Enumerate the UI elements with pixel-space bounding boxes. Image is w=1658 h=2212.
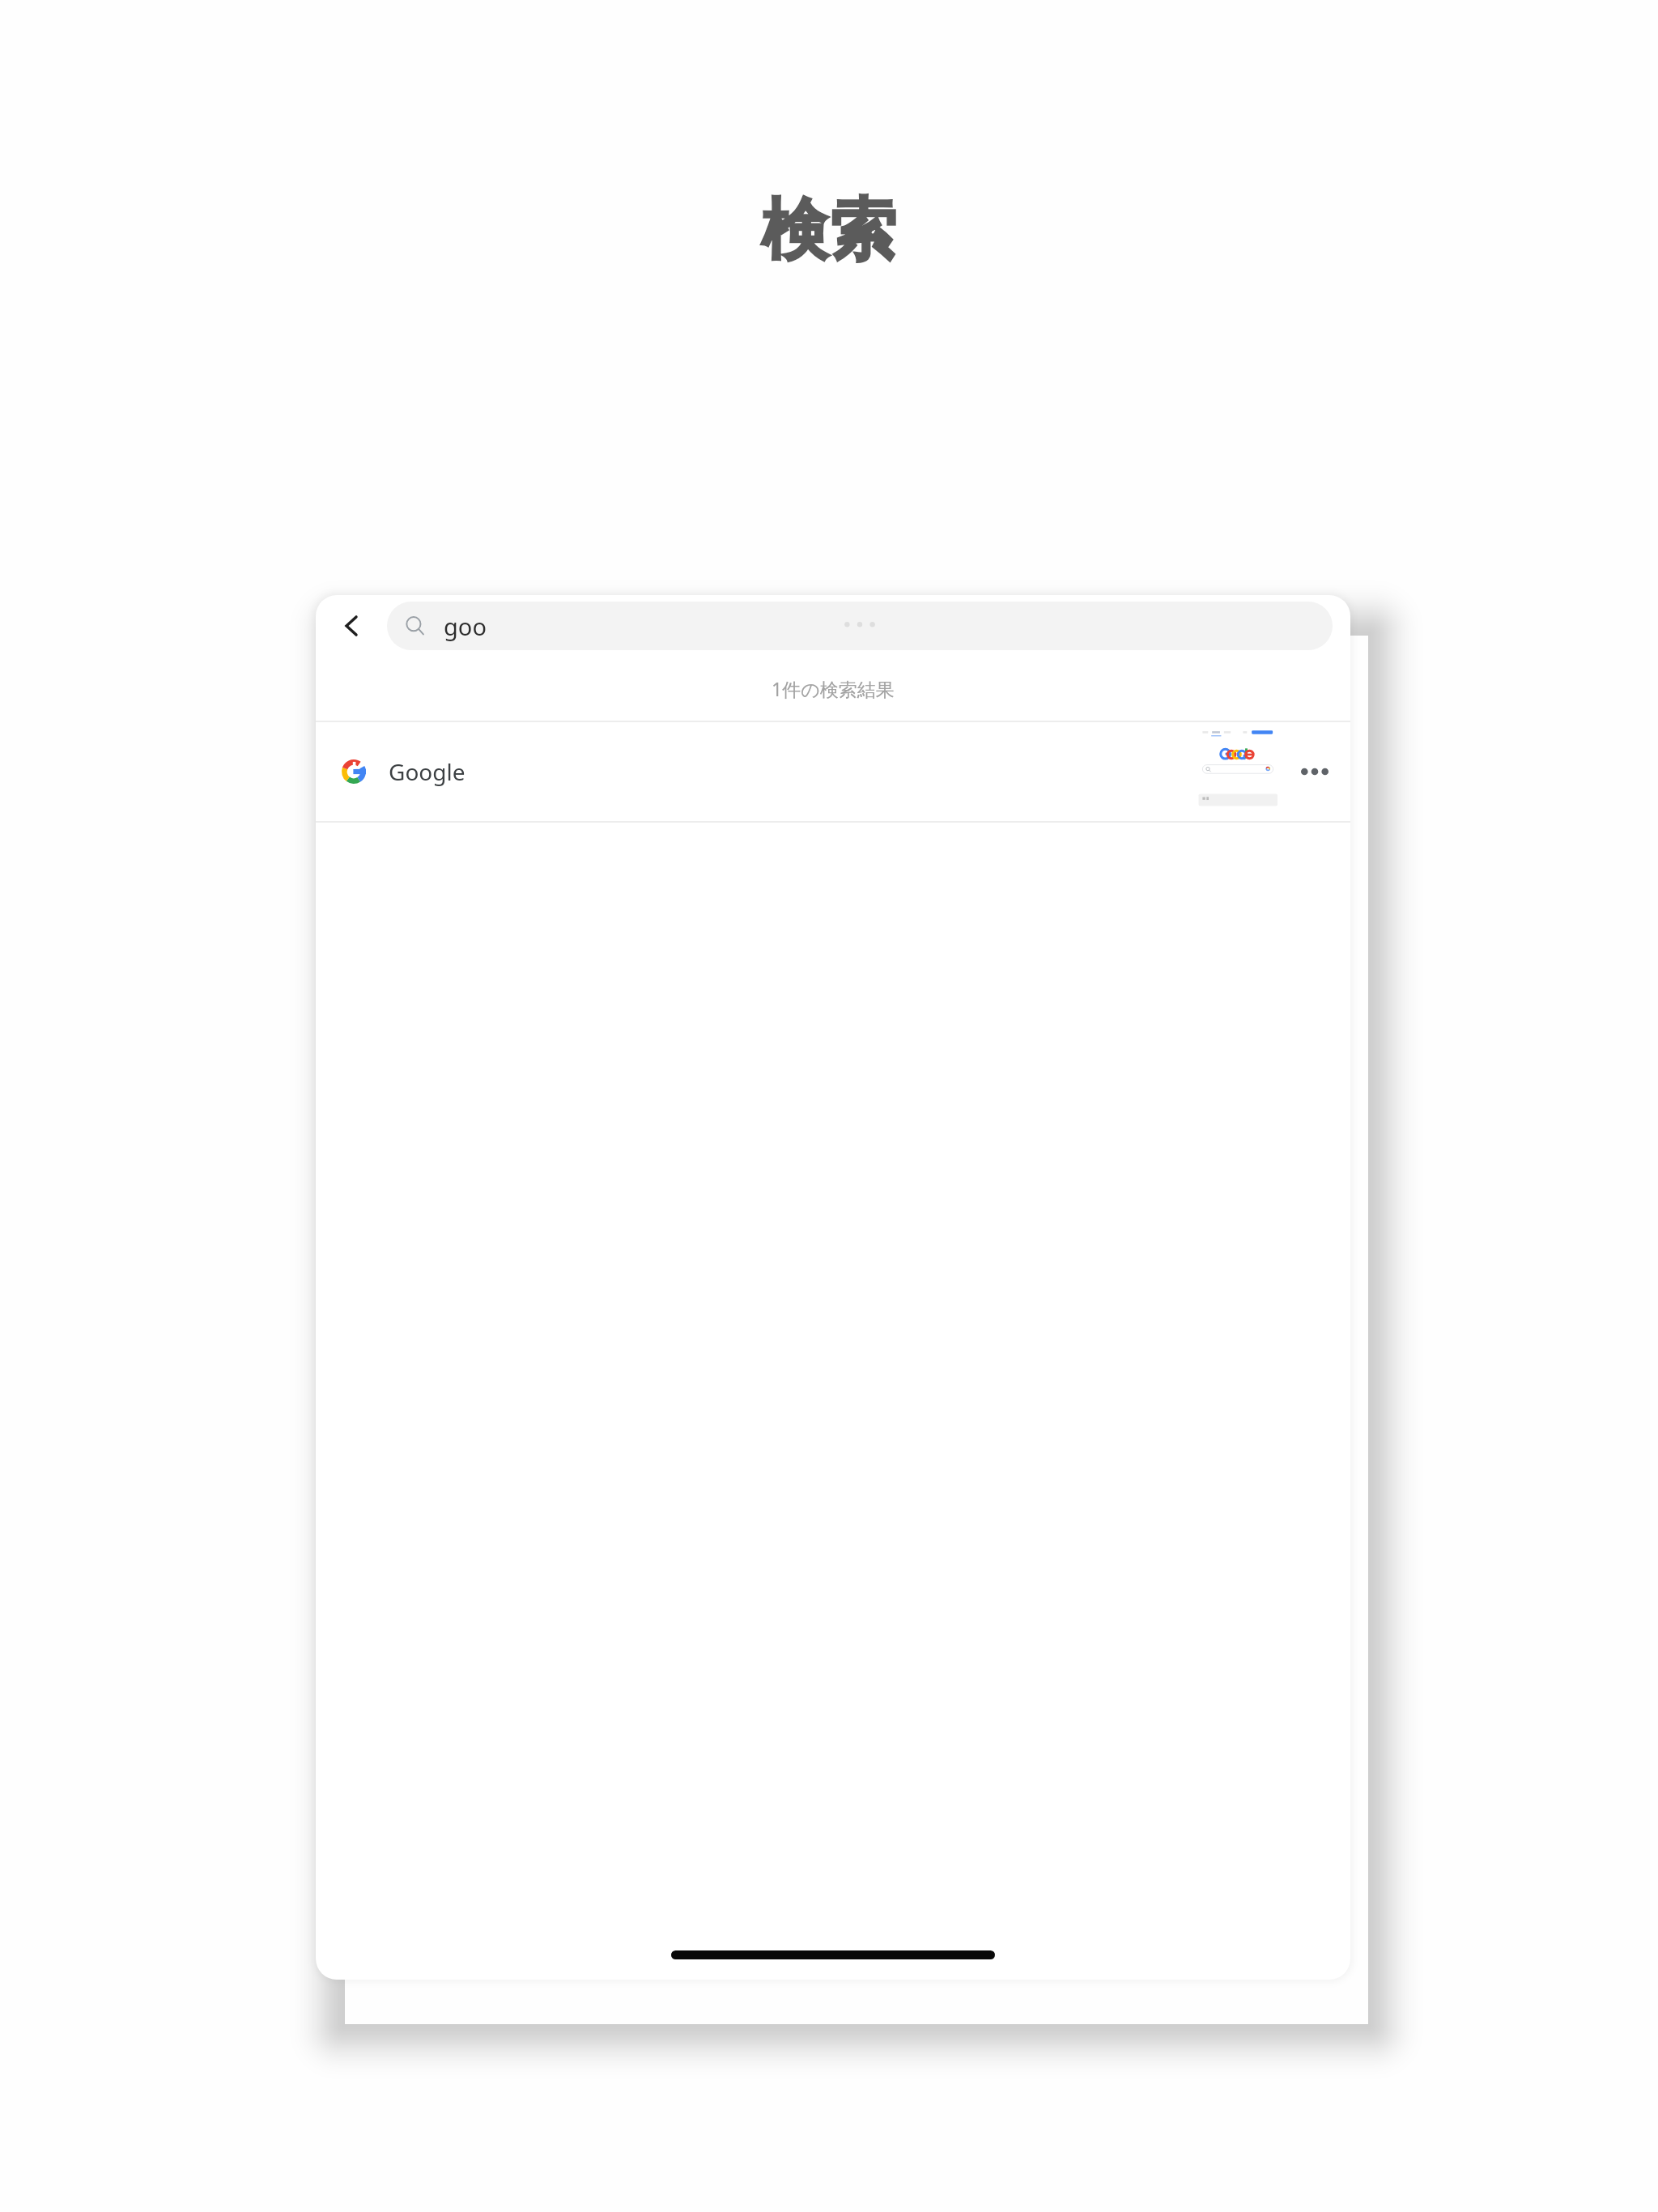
staticText: goo [444,610,487,642]
button[interactable]: その他のオプション [1290,722,1339,821]
staticText: 検索 [761,189,897,272]
button[interactable]: goo [387,602,1333,650]
button[interactable]: 戻る [316,595,387,656]
staticText: Google [389,756,466,787]
button[interactable]: Google [316,722,1350,821]
staticText: 1件の検索結果 [772,676,895,701]
